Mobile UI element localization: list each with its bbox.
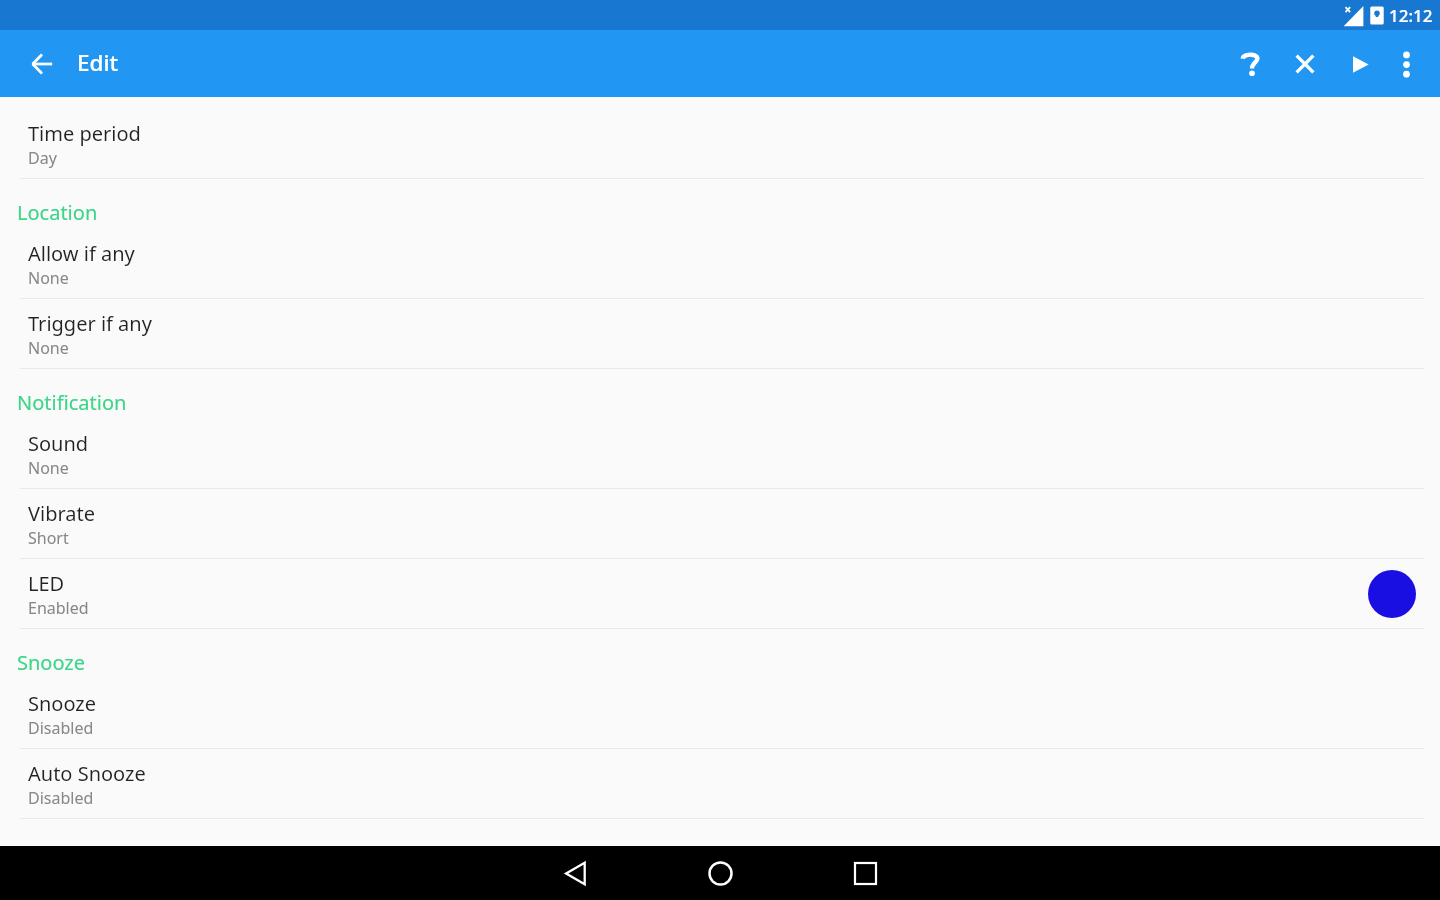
button[interactable]: Back	[536, 846, 614, 900]
staticText: Allow if any	[28, 240, 135, 267]
staticText: Day	[28, 147, 57, 169]
button[interactable]: Home	[681, 846, 759, 900]
staticText: Enabled	[28, 597, 89, 619]
staticText: Edit	[77, 47, 119, 78]
button[interactable]: Recents	[826, 846, 904, 900]
button[interactable]: Auto Snooze	[0, 749, 1440, 819]
button[interactable]: Back	[18, 40, 65, 87]
staticText: 12:12	[1389, 4, 1433, 27]
staticText: Trigger if any	[28, 310, 152, 337]
staticText: Snooze	[28, 690, 97, 717]
button[interactable]: LED	[0, 559, 1440, 629]
staticText: Sound	[28, 430, 89, 457]
staticText: Vibrate	[28, 500, 96, 527]
button[interactable]: More options	[1386, 36, 1427, 92]
button[interactable]: Sound	[0, 419, 1440, 489]
staticText: Location	[17, 199, 98, 226]
button[interactable]: Allow if any	[0, 229, 1440, 299]
staticText: None	[28, 267, 69, 289]
staticText: Snooze	[17, 649, 86, 676]
button[interactable]: Vibrate	[0, 489, 1440, 559]
button[interactable]: Snooze	[0, 679, 1440, 749]
button[interactable]: Help	[1227, 36, 1276, 92]
staticText: Notification	[17, 389, 127, 416]
button[interactable]: Play	[1334, 36, 1386, 92]
staticText: None	[28, 337, 69, 359]
staticText: Disabled	[28, 787, 94, 809]
staticText: Time period	[28, 120, 141, 147]
button[interactable]: Close	[1276, 36, 1334, 92]
staticText: None	[28, 457, 69, 479]
staticText: Auto Snooze	[28, 760, 146, 787]
staticText: Short	[28, 527, 69, 549]
staticText: LED	[28, 570, 65, 597]
button[interactable]: Trigger if any	[0, 299, 1440, 369]
staticText: Disabled	[28, 717, 94, 739]
button[interactable]: Time period	[0, 109, 1440, 179]
